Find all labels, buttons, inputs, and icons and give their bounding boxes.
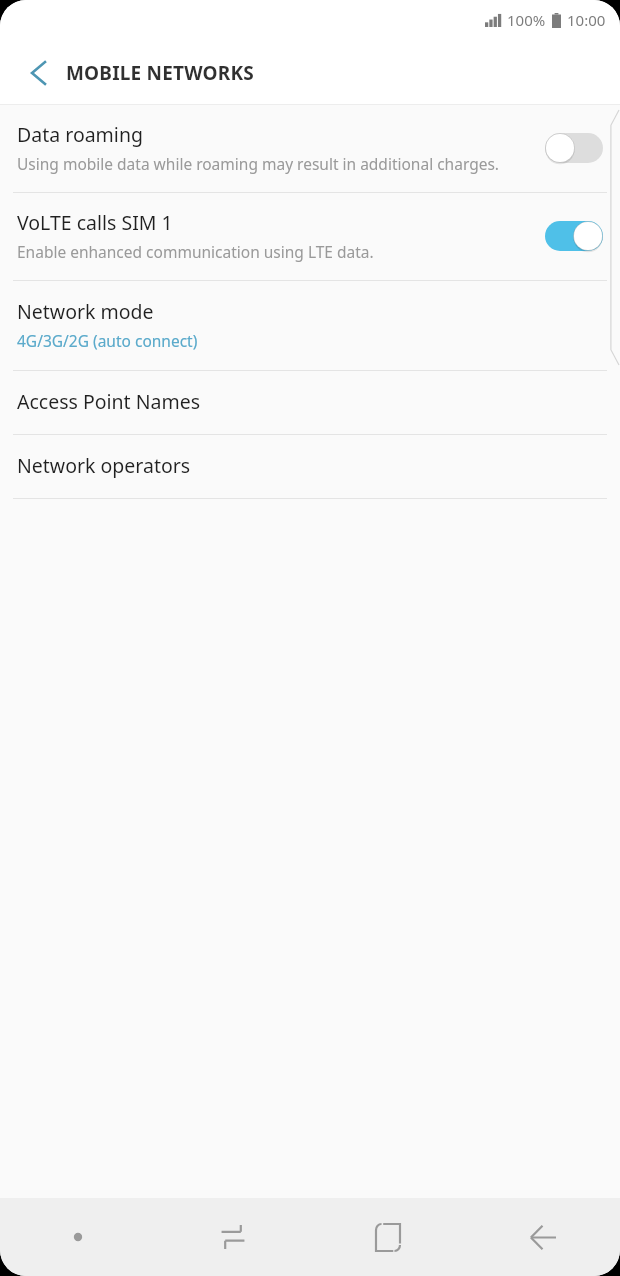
button[interactable]: Toggle off — [545, 133, 603, 163]
button[interactable]: Back — [14, 49, 62, 97]
button[interactable]: Network operators — [0, 435, 620, 498]
staticText: Network operators — [17, 452, 191, 479]
staticText: 100% — [507, 10, 546, 30]
staticText: Access Point Names — [17, 388, 201, 415]
staticText: Using mobile data while roaming may resu… — [17, 153, 499, 174]
staticText: Network mode — [17, 298, 154, 325]
button[interactable]: Access Point Names — [0, 371, 620, 434]
button[interactable]: Data roaming — [0, 105, 620, 192]
staticText: Enable enhanced communication using LTE … — [17, 241, 374, 262]
staticText: 10:00 — [567, 10, 606, 30]
button[interactable]: Back — [465, 1198, 620, 1276]
button[interactable]: Home — [310, 1198, 465, 1276]
button[interactable]: Toggle on — [545, 221, 603, 251]
staticText: 4G/3G/2G (auto connect) — [17, 330, 198, 351]
button[interactable]: VoLTE calls SIM 1 — [0, 193, 620, 280]
staticText: Data roaming — [17, 121, 143, 148]
staticText: MOBILE NETWORKS — [66, 60, 254, 86]
button[interactable]: Network mode — [0, 281, 620, 370]
button[interactable]: Hide navigation bar — [0, 1198, 155, 1276]
staticText: VoLTE calls SIM 1 — [17, 209, 173, 236]
button[interactable]: Recent apps — [155, 1198, 310, 1276]
